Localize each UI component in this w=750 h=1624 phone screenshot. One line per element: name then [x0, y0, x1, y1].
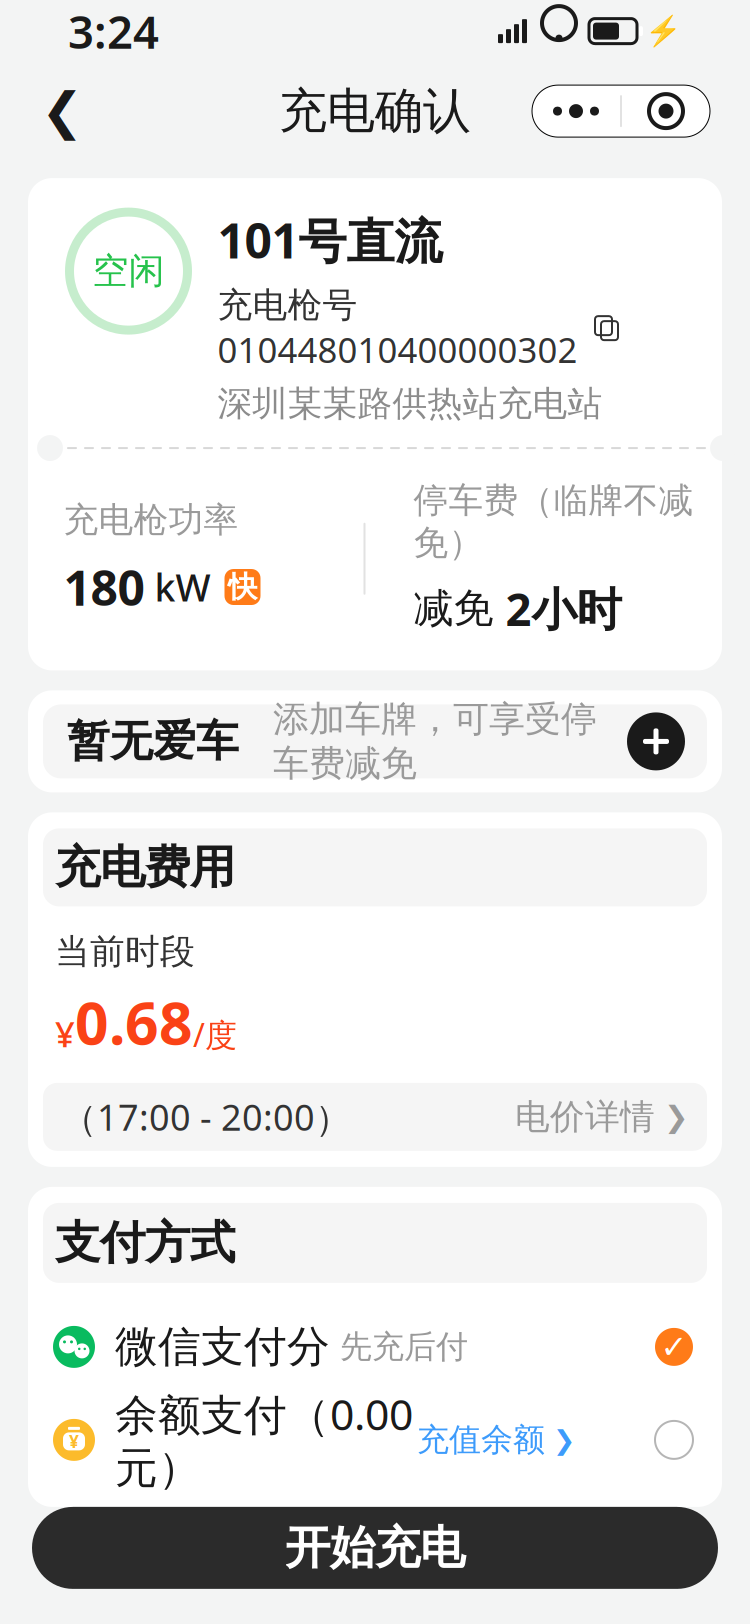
staticText: 先充后付 [340, 1327, 468, 1366]
staticText: ✓ [660, 1329, 687, 1365]
staticText: 暂无爱车 [67, 715, 239, 768]
staticText: ❯ [655, 1100, 689, 1133]
staticText: 电价详情 [515, 1096, 655, 1138]
staticText: 0.68 [75, 983, 193, 1061]
staticText: 空闲 [92, 249, 164, 293]
staticText: ❮ [41, 82, 83, 140]
staticText: 微信支付分 [115, 1321, 330, 1373]
staticText: 深圳某某路供热站充电站 [217, 382, 602, 425]
staticText: kW [144, 562, 210, 612]
staticText: 充值余额 [417, 1420, 545, 1459]
staticText: 180 [63, 555, 144, 619]
staticText: 2小时 [505, 578, 621, 638]
staticText: 添加车牌，可享受停车费减免 [273, 697, 597, 786]
staticText: ¥ [69, 1430, 79, 1453]
button[interactable]: （17:00 - 20:00） [43, 1083, 707, 1151]
staticText: ¥ [55, 1011, 75, 1057]
staticText: 充电枪号010448010400000302 [217, 284, 577, 372]
staticText: 停车费（临牌不减免） [413, 479, 693, 564]
staticText: ⚡ [645, 14, 682, 48]
staticText: 充电确认 [279, 82, 471, 141]
staticText: 3:24 [68, 1, 159, 61]
button[interactable]: 开始充电 [32, 1507, 718, 1589]
button[interactable]: 胶囊菜单 [622, 86, 710, 136]
staticText: 减免 [413, 584, 505, 633]
button[interactable]: ¥ [43, 1395, 707, 1485]
staticText: （17:00 - 20:00） [61, 1093, 351, 1141]
staticText: 充电费用 [55, 840, 235, 895]
staticText: 101号直流 [217, 208, 442, 272]
staticText: 开始充电 [285, 1520, 465, 1576]
button[interactable]: 更多 [532, 86, 620, 136]
staticText: 当前时段 [55, 930, 195, 973]
staticText: 充电枪功率 [63, 499, 238, 541]
staticText: 支付方式 [55, 1215, 235, 1271]
button[interactable]: 暂无爱车 [28, 690, 722, 792]
staticText: ❯ [545, 1425, 575, 1455]
staticText: /度 [193, 1013, 237, 1056]
staticText: 快 [228, 569, 257, 605]
button[interactable]: 返回 [22, 71, 102, 151]
staticText: 余额支付（0.00元） [115, 1385, 413, 1494]
button[interactable]: 微信支付分 [43, 1299, 707, 1395]
button[interactable]: 复制枪号 [589, 311, 623, 345]
